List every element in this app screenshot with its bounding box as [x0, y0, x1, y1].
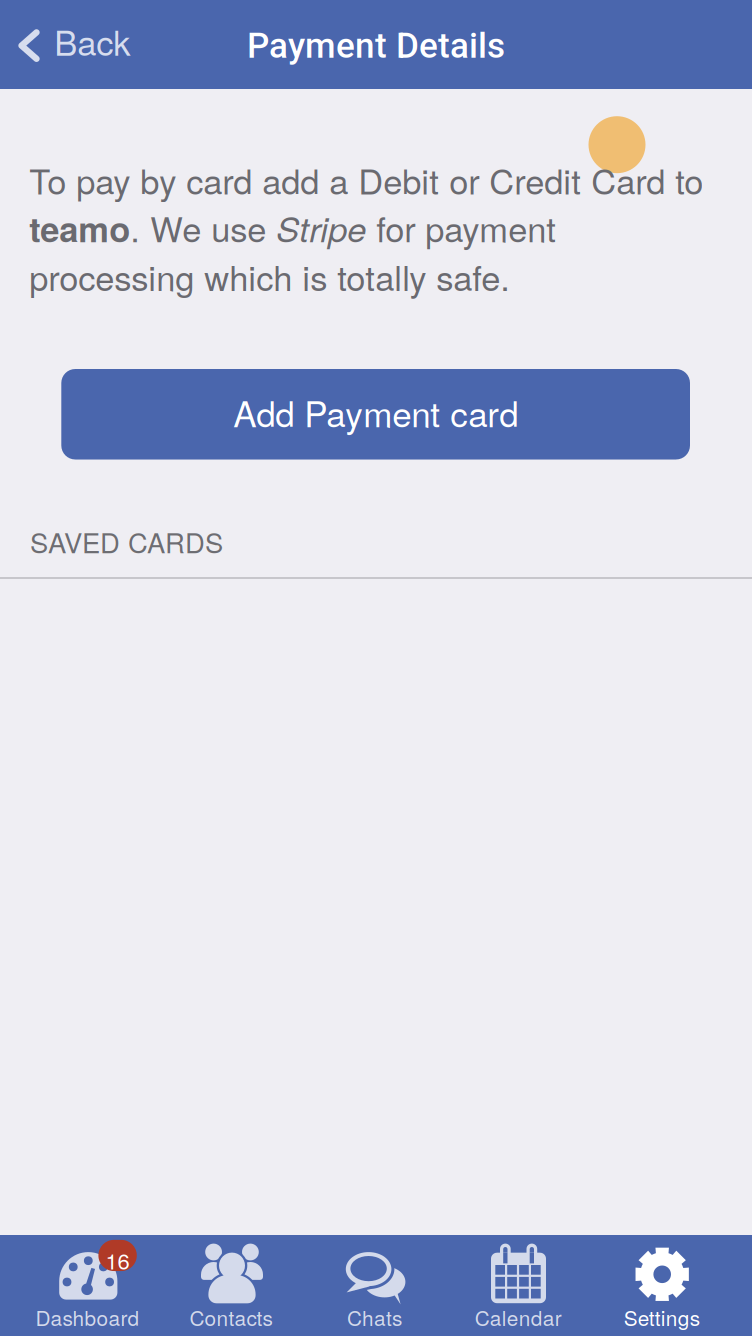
button[interactable]: Back — [0, 0, 160, 89]
staticText: Payment Details — [247, 25, 505, 66]
staticText: SAVED CARDS — [30, 522, 223, 561]
button[interactable]: Dashboard — [16, 1235, 159, 1336]
button[interactable]: Add Payment card — [61, 369, 690, 459]
staticText: 16 — [106, 1244, 130, 1276]
button[interactable]: Calendar — [446, 1235, 590, 1336]
button[interactable]: Chats — [303, 1235, 446, 1336]
staticText: To pay by card add a Debit or Credit Car… — [29, 155, 703, 300]
staticText: Back — [54, 16, 130, 65]
staticText: Calendar — [475, 1302, 562, 1332]
staticText: Chats — [347, 1302, 402, 1332]
staticText: Dashboard — [35, 1302, 139, 1332]
staticText: Settings — [624, 1302, 700, 1332]
staticText: Add Payment card — [233, 387, 518, 437]
button[interactable]: Contacts — [159, 1235, 303, 1336]
staticText: Contacts — [189, 1302, 272, 1332]
button[interactable]: Settings — [590, 1235, 734, 1336]
